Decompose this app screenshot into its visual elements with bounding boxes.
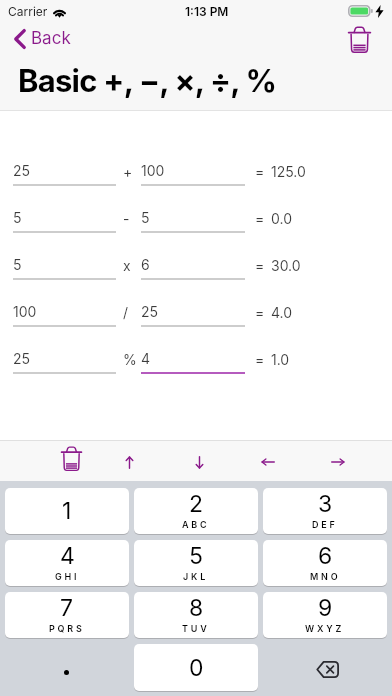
button[interactable]: 8 [134, 592, 258, 638]
button[interactable]: Move left [254, 448, 282, 476]
staticText: = [255, 304, 265, 321]
button[interactable]: 5 [13, 209, 116, 233]
staticText: 4.0 [271, 304, 293, 321]
staticText: 5 [13, 209, 22, 226]
staticText: Carrier [8, 4, 48, 19]
staticText: 125.0 [271, 163, 306, 180]
staticText: 100 [141, 162, 165, 179]
staticText: GHI [55, 571, 80, 582]
button[interactable]: Delete all [344, 24, 374, 54]
button[interactable]: 5 [134, 540, 258, 586]
staticText: 5 [141, 209, 150, 226]
button[interactable]: Next field [185, 448, 213, 476]
button[interactable]: 5 [141, 209, 245, 233]
staticText: 25 [13, 350, 31, 367]
staticText: Back [31, 28, 71, 49]
button[interactable]: 4 [141, 350, 245, 374]
staticText: 30.0 [271, 257, 301, 274]
staticText: 8 [189, 594, 204, 622]
staticText: 5 [189, 542, 203, 570]
button[interactable]: 3 [263, 488, 387, 534]
staticText: DEF [312, 519, 338, 530]
staticText: WXYZ [305, 623, 345, 634]
button[interactable]: 9 [263, 592, 387, 638]
staticText: TUV [182, 623, 210, 634]
button[interactable]: Decimal point [5, 644, 129, 691]
staticText: 0.0 [271, 210, 292, 227]
staticText: 1 [62, 497, 72, 525]
button[interactable]: 5 [13, 256, 116, 280]
button[interactable]: 25 [13, 162, 116, 186]
staticText: 5 [13, 256, 22, 273]
button[interactable]: 25 [13, 350, 116, 374]
button[interactable]: 4 [5, 540, 129, 586]
button[interactable]: 100 [13, 303, 116, 327]
staticText: x [123, 257, 131, 274]
staticText: 6 [318, 542, 333, 570]
button[interactable]: Move right [324, 448, 352, 476]
staticText: 6 [141, 256, 150, 273]
button[interactable]: 25 [141, 303, 245, 327]
staticText: 2 [189, 490, 204, 518]
button[interactable]: 6 [263, 540, 387, 586]
staticText: 4 [60, 542, 75, 570]
staticText: = [255, 210, 265, 227]
button[interactable]: 7 [5, 592, 129, 638]
staticText: = [255, 163, 265, 180]
button[interactable]: 0 [134, 644, 258, 691]
staticText: 1:13 PM [185, 4, 229, 19]
staticText: - [123, 210, 130, 227]
staticText: + [123, 163, 133, 180]
staticText: MNO [310, 571, 341, 582]
staticText: Basic +, −, ×, ÷, % [18, 62, 277, 100]
button[interactable]: Previous field [115, 448, 143, 476]
staticText: PQRS [49, 623, 85, 634]
staticText: 25 [13, 162, 31, 179]
button[interactable]: Back [12, 26, 73, 51]
staticText: = [255, 257, 265, 274]
staticText: 9 [318, 594, 333, 622]
staticText: JKL [183, 571, 209, 582]
staticText: 1.0 [271, 351, 290, 368]
button[interactable]: 2 [134, 488, 258, 534]
button[interactable]: Clear [57, 444, 85, 472]
staticText: = [255, 351, 265, 368]
button[interactable]: 6 [141, 256, 245, 280]
button[interactable]: 1 [5, 488, 129, 534]
staticText: / [123, 304, 129, 321]
staticText: 3 [318, 490, 333, 518]
staticText: 4 [141, 350, 151, 367]
button[interactable]: 100 [141, 162, 245, 186]
staticText: % [123, 351, 137, 368]
staticText: ABC [182, 519, 210, 530]
staticText: 25 [141, 303, 159, 320]
staticText: 7 [60, 594, 74, 622]
staticText: 0 [189, 654, 204, 682]
button[interactable]: Backspace [263, 644, 387, 691]
staticText: 100 [13, 303, 37, 320]
